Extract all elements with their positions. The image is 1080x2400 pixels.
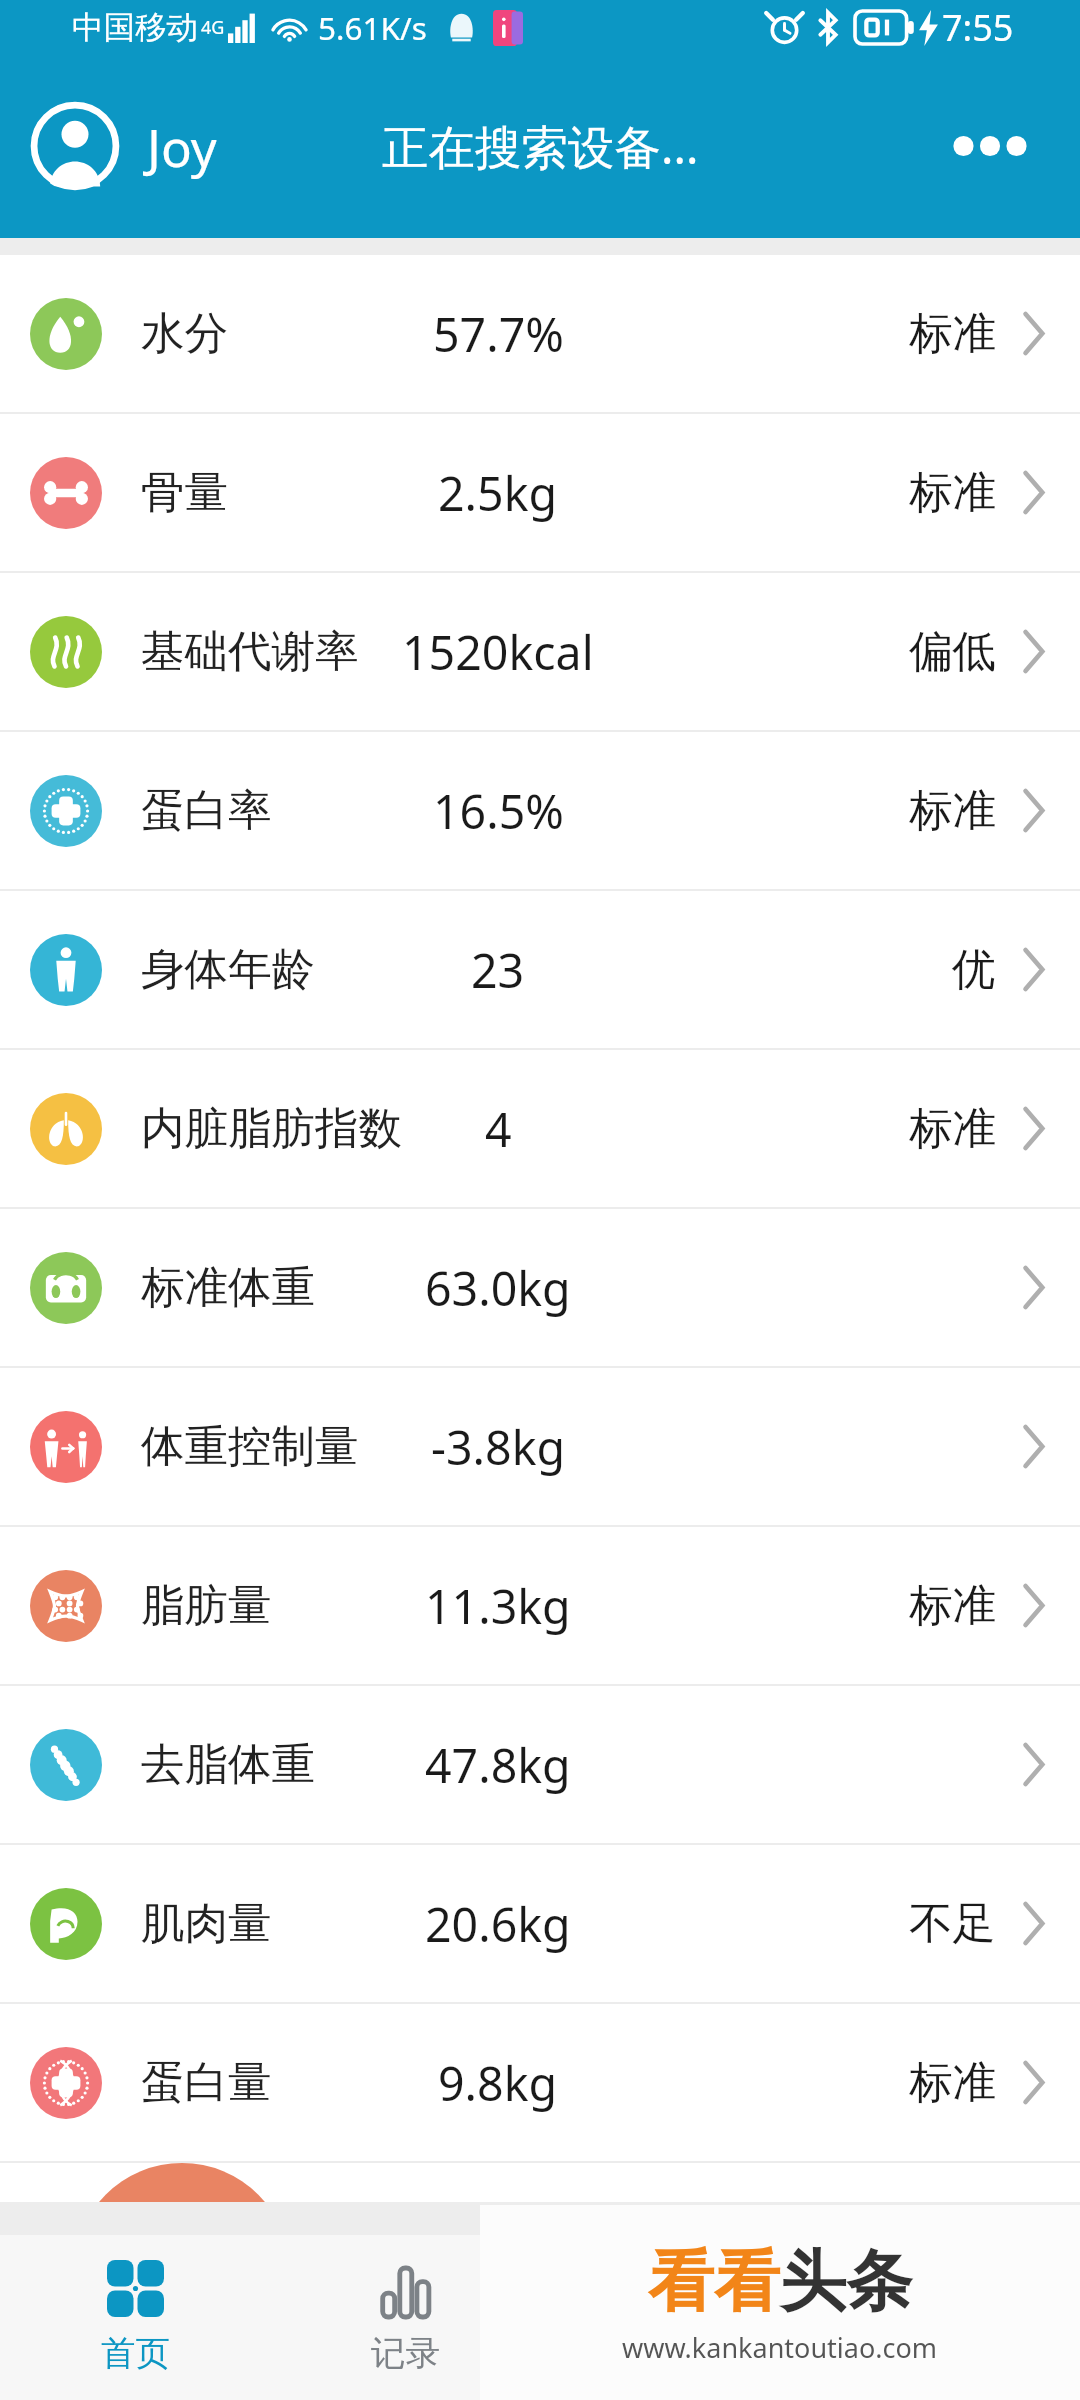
staticText: 标准 — [909, 465, 996, 520]
staticText: 基础代谢率 — [141, 624, 359, 679]
staticText: 63.0kg — [425, 1256, 571, 1319]
staticText: 体重控制量 — [141, 1419, 359, 1474]
button[interactable]: 水分 — [0, 255, 1080, 412]
staticText: 标准 — [909, 2055, 996, 2110]
button[interactable]: 骨量 — [0, 414, 1080, 571]
staticText: 头条 — [780, 2240, 912, 2323]
staticText: 标准 — [909, 783, 996, 838]
staticText: 骨量 — [141, 465, 228, 520]
staticText: 蛋白量 — [141, 2055, 272, 2110]
button[interactable]: 记录 — [270, 2235, 540, 2400]
staticText: 20.6kg — [425, 1892, 571, 1955]
staticText: 蛋白率 — [141, 783, 272, 838]
staticText: 标准 — [909, 1578, 996, 1633]
staticText: 23 — [471, 938, 525, 1001]
button[interactable]: 脂肪量 — [0, 1527, 1080, 1684]
staticText: 脂肪量 — [141, 1578, 272, 1633]
staticText: 47.8kg — [425, 1733, 571, 1796]
button[interactable]: 身体年龄 — [0, 891, 1080, 1048]
staticText: 1520kcal — [402, 620, 594, 683]
staticText: 7:55 — [942, 3, 1014, 52]
staticText: -3.8kg — [431, 1415, 566, 1478]
staticText: 身体年龄 — [141, 942, 315, 997]
staticText: 9.8kg — [438, 2051, 558, 2114]
button[interactable]: 内脏脂肪指数 — [0, 1050, 1080, 1207]
staticText: 标准 — [909, 1101, 996, 1156]
staticText: 不足 — [909, 1896, 996, 1951]
staticText: 2.5kg — [438, 461, 558, 524]
staticText: 去脂体重 — [141, 1737, 315, 1792]
button[interactable]: 体重控制量 — [0, 1368, 1080, 1525]
staticText: 肌肉量 — [141, 1896, 272, 1951]
staticText: 标准 — [909, 306, 996, 361]
staticText: 57.7% — [433, 302, 564, 365]
button[interactable]: 去脂体重 — [0, 1686, 1080, 1843]
button[interactable]: 标准体重 — [0, 1209, 1080, 1366]
staticText: 5.61K/s — [318, 6, 427, 49]
button[interactable]: 肌肉量 — [0, 1845, 1080, 2002]
staticText: 看看 — [648, 2240, 780, 2323]
staticText: 记录 — [371, 2332, 440, 2375]
button[interactable]: Joy — [30, 101, 217, 191]
staticText: 11.3kg — [425, 1574, 571, 1637]
staticText: 优 — [952, 942, 996, 997]
staticText: 水分 — [141, 306, 228, 361]
staticText: www.kankantoutiao.com — [622, 2329, 938, 2366]
staticText: 首页 — [101, 2332, 170, 2375]
button[interactable]: 蛋白量 — [0, 2004, 1080, 2161]
staticText: 标准体重 — [141, 1260, 315, 1315]
staticText: 4 — [485, 1097, 512, 1160]
staticText: 内脏脂肪指数 — [141, 1101, 402, 1156]
button[interactable]: 基础代谢率 — [0, 573, 1080, 730]
staticText: 中国移动 — [72, 8, 198, 48]
button[interactable]: 蛋白率 — [0, 732, 1080, 889]
staticText: 正在搜索设备... — [382, 114, 699, 178]
button[interactable]: Discover — [540, 2235, 810, 2400]
staticText: Joy — [147, 112, 217, 181]
staticText: 4G — [201, 15, 225, 40]
staticText: 16.5% — [433, 779, 564, 842]
button[interactable]: More options — [924, 80, 1056, 212]
button[interactable]: 首页 — [0, 2235, 270, 2400]
button[interactable]: Profile — [810, 2235, 1080, 2400]
staticText: 偏低 — [909, 624, 996, 679]
